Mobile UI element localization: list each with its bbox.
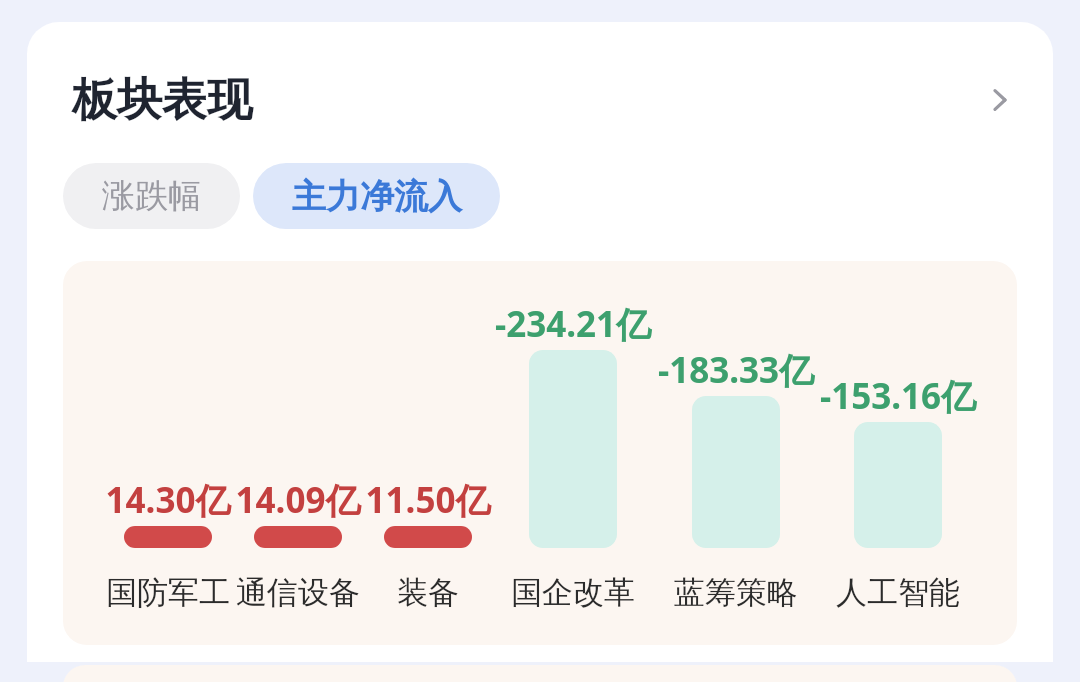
button[interactable]: 国企改革	[473, 573, 673, 612]
staticText: 涨跌幅	[102, 175, 201, 217]
button[interactable]: 装备	[328, 573, 528, 612]
button[interactable]	[854, 422, 942, 548]
button[interactable]	[384, 526, 472, 548]
staticText: 主力净流入	[292, 175, 462, 218]
staticText: 11.50亿	[298, 476, 558, 524]
button[interactable]	[529, 350, 617, 548]
button[interactable]	[692, 396, 780, 548]
button[interactable]: 主力净流入	[253, 163, 500, 229]
button[interactable]: 涨跌幅	[63, 163, 240, 229]
other: More sector performance	[972, 72, 1028, 128]
button[interactable]: 板块表现	[60, 62, 1028, 138]
button[interactable]: 国防军工	[68, 573, 268, 612]
staticText: -153.16亿	[768, 372, 1028, 420]
button[interactable]: 蓝筹策略	[636, 573, 836, 612]
staticText: -234.21亿	[443, 300, 703, 348]
staticText: 14.09亿	[168, 476, 428, 524]
button[interactable]	[124, 526, 212, 548]
staticText: 14.30亿	[38, 476, 298, 524]
button[interactable]: 通信设备	[198, 573, 398, 612]
button[interactable]	[254, 526, 342, 548]
button[interactable]: 人工智能	[798, 573, 998, 612]
staticText: 板块表现	[72, 72, 252, 129]
staticText: -183.33亿	[606, 346, 866, 394]
